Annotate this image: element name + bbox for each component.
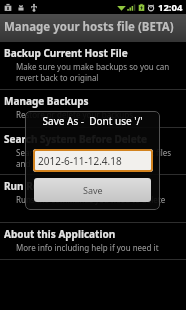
staticText: Backup Current Host File [4,46,128,60]
button[interactable]: Search System Before Delete [0,128,186,174]
button[interactable]: Manage Backups [0,90,186,127]
button[interactable]: Save [34,178,151,202]
staticText: Save As - Dont use '/' [25,114,160,128]
button[interactable]: About this Application [0,223,186,259]
staticText: 2012-6-11-12.4.18 [38,154,122,168]
staticText: More info including help if you need it [16,242,159,253]
button[interactable]: Backup Current Host File [0,42,186,89]
staticText: Runs the commands you need to delete [16,194,166,205]
staticText: 12:04 [158,1,183,14]
button[interactable]: 2012-6-11-12.4.18 [33,149,153,172]
staticText: Search System Before Delete [4,132,148,146]
button[interactable]: Run Root Commands [0,175,186,222]
staticText: Make sure you make backups so you can re… [16,61,180,83]
staticText: Manage your hosts file (BETA) [4,19,174,35]
staticText: Run Root Commands [4,179,109,193]
staticText: Restore or delete your backups [16,109,133,120]
staticText: Save [83,184,103,196]
staticText: Manage Backups [4,94,89,108]
staticText: Searches your whole system for host file… [16,147,180,169]
staticText: About this Application [4,227,116,241]
